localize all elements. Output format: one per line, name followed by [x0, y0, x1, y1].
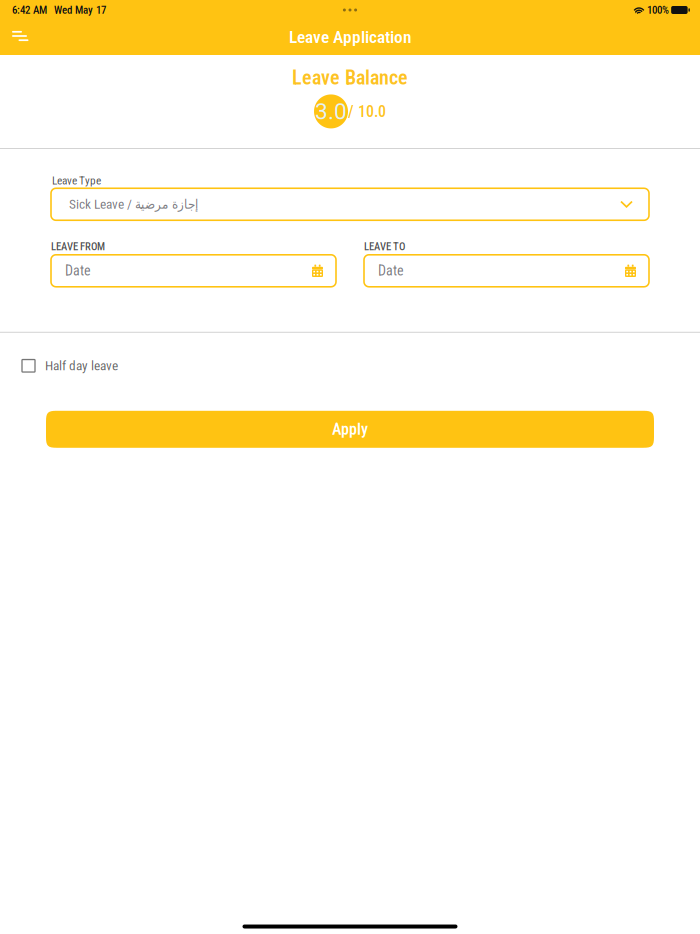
staticText: 100%	[647, 4, 669, 16]
staticText: Half day leave	[45, 358, 118, 374]
staticText: 6:42 AM	[12, 4, 47, 16]
staticText: Wed May 17	[54, 4, 106, 16]
button[interactable]: Apply	[46, 411, 654, 448]
staticText: LEAVE FROM	[51, 240, 105, 253]
button[interactable]: Sick Leave / إجازة مرضية	[51, 188, 649, 220]
button[interactable]: Menu	[0, 20, 39, 55]
staticText: Leave Balance	[292, 66, 408, 89]
button[interactable]: Date	[364, 255, 649, 287]
staticText: Apply	[332, 420, 368, 439]
button[interactable]: Half day leave	[0, 349, 700, 383]
staticText: Date	[65, 263, 91, 279]
staticText: LEAVE TO	[364, 240, 405, 253]
staticText: Leave Application	[289, 27, 411, 47]
staticText: / 10.0	[348, 102, 386, 121]
staticText: Leave Type	[52, 174, 101, 187]
staticText: 3.0	[315, 98, 347, 125]
button[interactable]: Date	[51, 255, 336, 287]
staticText: Sick Leave / إجازة مرضية	[69, 196, 198, 212]
staticText: Date	[378, 263, 404, 279]
